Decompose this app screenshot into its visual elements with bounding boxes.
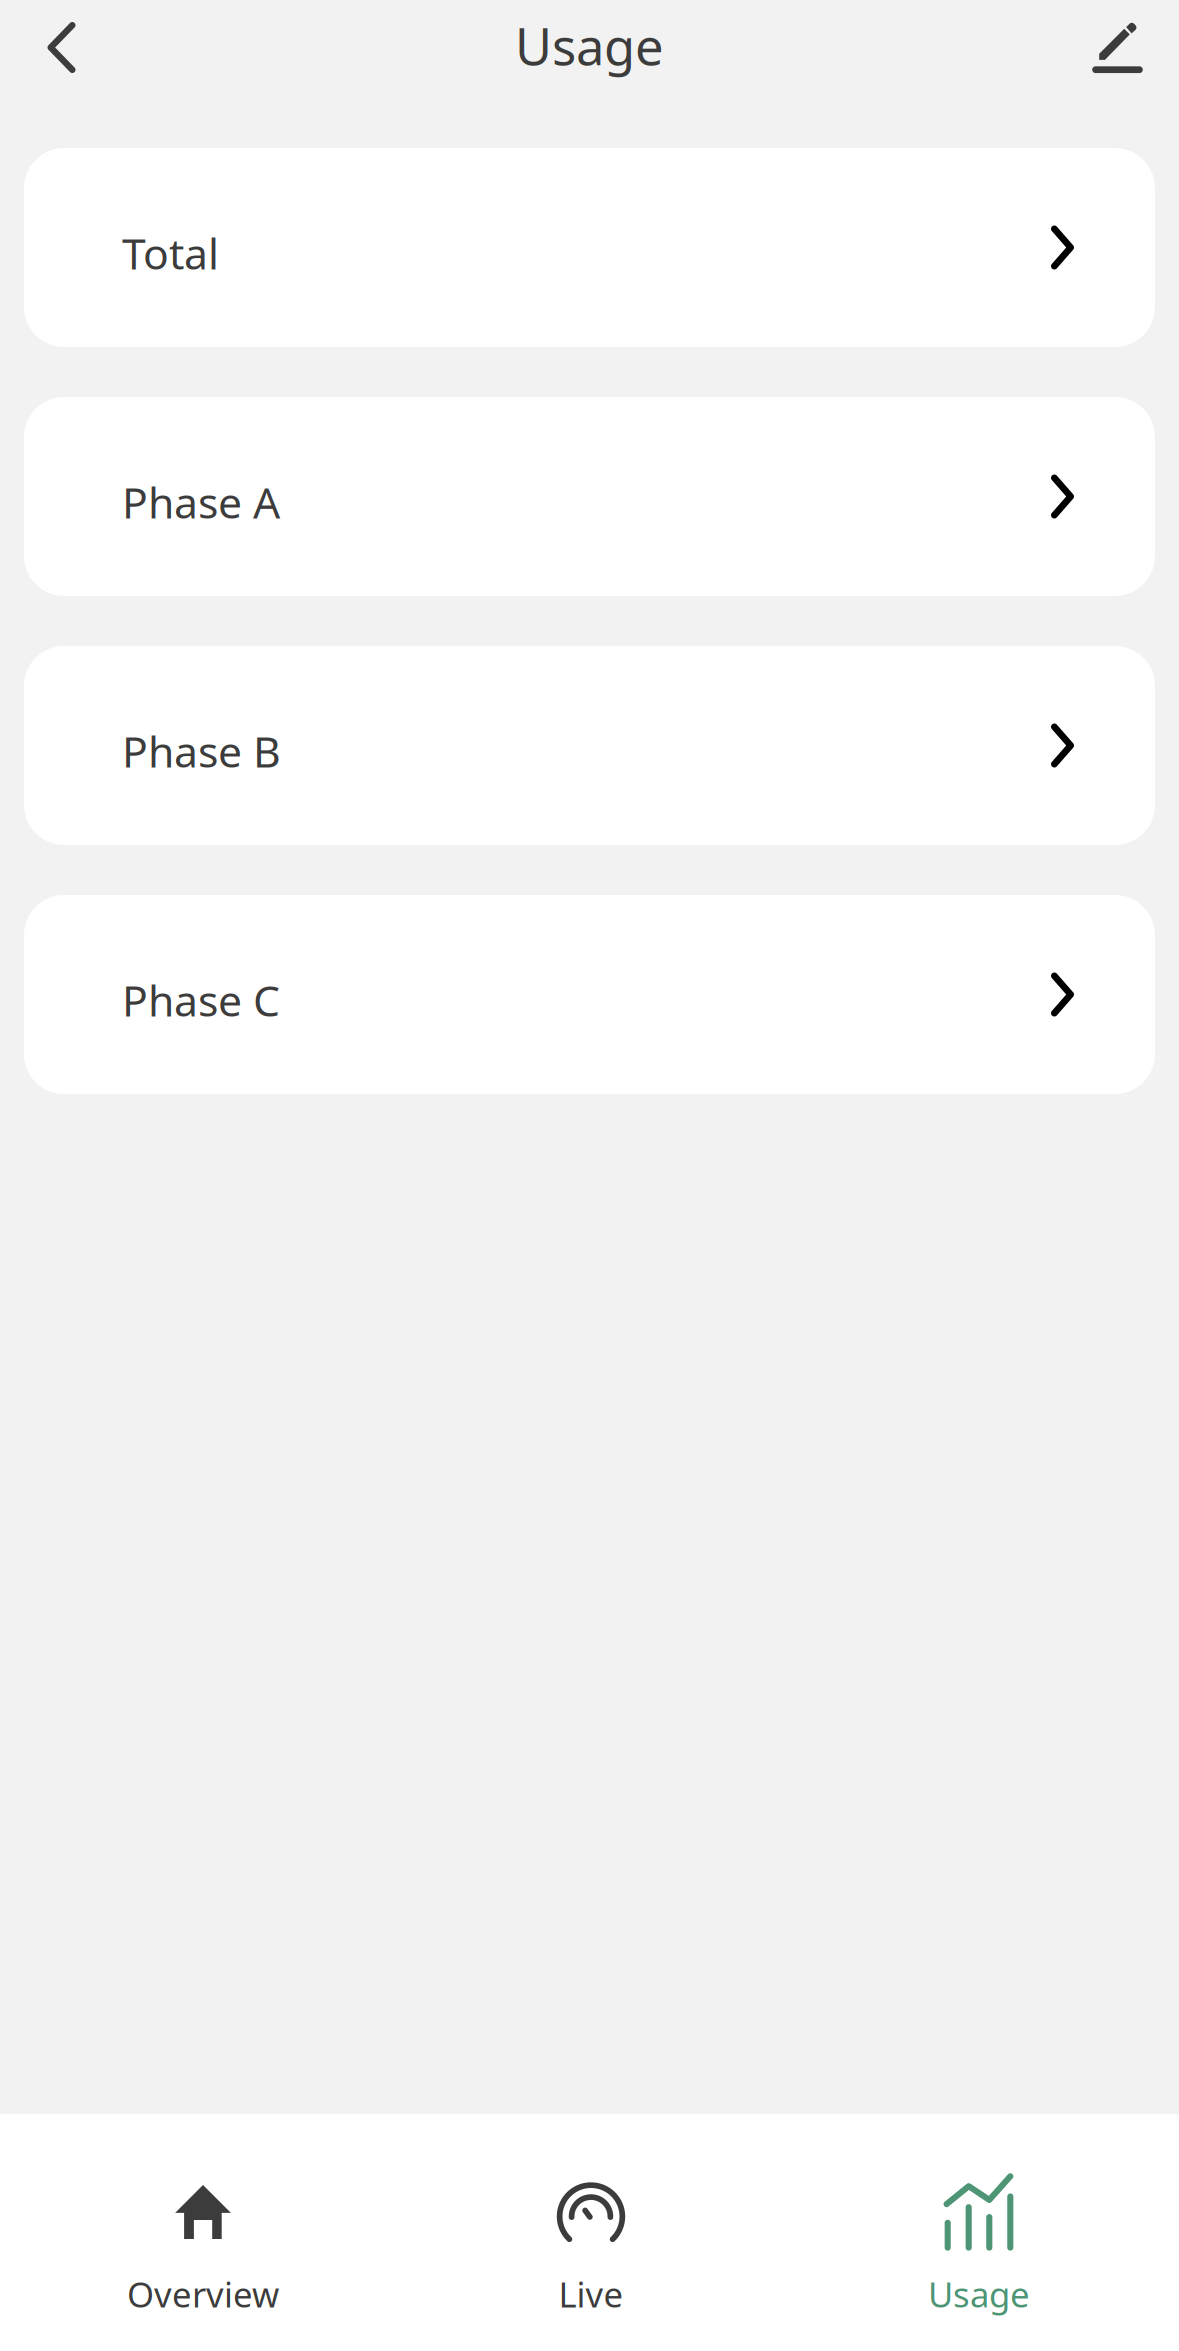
button[interactable]: Live [397,2114,785,2351]
button[interactable]: Usage [785,2114,1173,2351]
staticText: Live [558,2271,623,2317]
button[interactable]: Phase C [24,895,1155,1094]
button[interactable]: Overview [9,2114,397,2351]
button[interactable]: Phase B [24,646,1155,845]
staticText: Total [122,225,219,281]
button[interactable]: Back [24,0,99,95]
button[interactable]: Edit [1080,0,1155,95]
staticText: Overview [127,2271,279,2317]
staticText: Usage [928,2271,1030,2317]
staticText: Phase A [122,474,280,530]
staticText: Phase B [122,723,281,779]
staticText: Phase C [122,972,280,1028]
button[interactable]: Phase A [24,397,1155,596]
button[interactable]: Total [24,148,1155,347]
staticText: Usage [515,12,664,79]
